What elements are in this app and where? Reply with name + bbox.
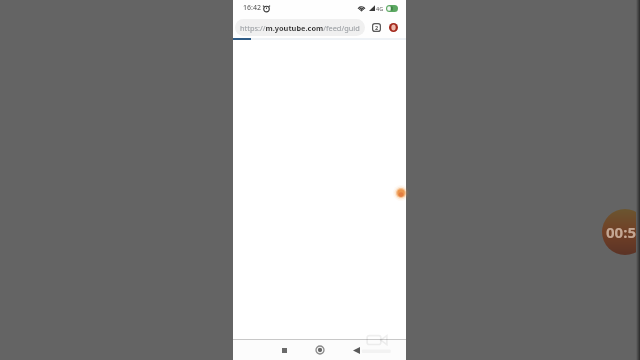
button[interactable]: Back xyxy=(349,343,363,357)
button[interactable]: Home xyxy=(313,343,327,357)
button[interactable]: Recents xyxy=(277,343,291,357)
staticText: 2 xyxy=(375,24,379,31)
button[interactable]: Chat xyxy=(393,185,409,201)
button[interactable]: Recording timer xyxy=(602,209,640,255)
button[interactable]: https://m.youtube.com/feed/guid xyxy=(235,19,365,36)
staticText: https://m.youtube.com/feed/guid xyxy=(240,23,360,33)
staticText: 16:42 xyxy=(243,3,261,13)
staticText: 00:55 xyxy=(606,222,640,242)
button[interactable]: Opera menu xyxy=(386,20,400,34)
staticText: 4G xyxy=(376,5,384,12)
button[interactable]: Tabs xyxy=(369,20,383,34)
